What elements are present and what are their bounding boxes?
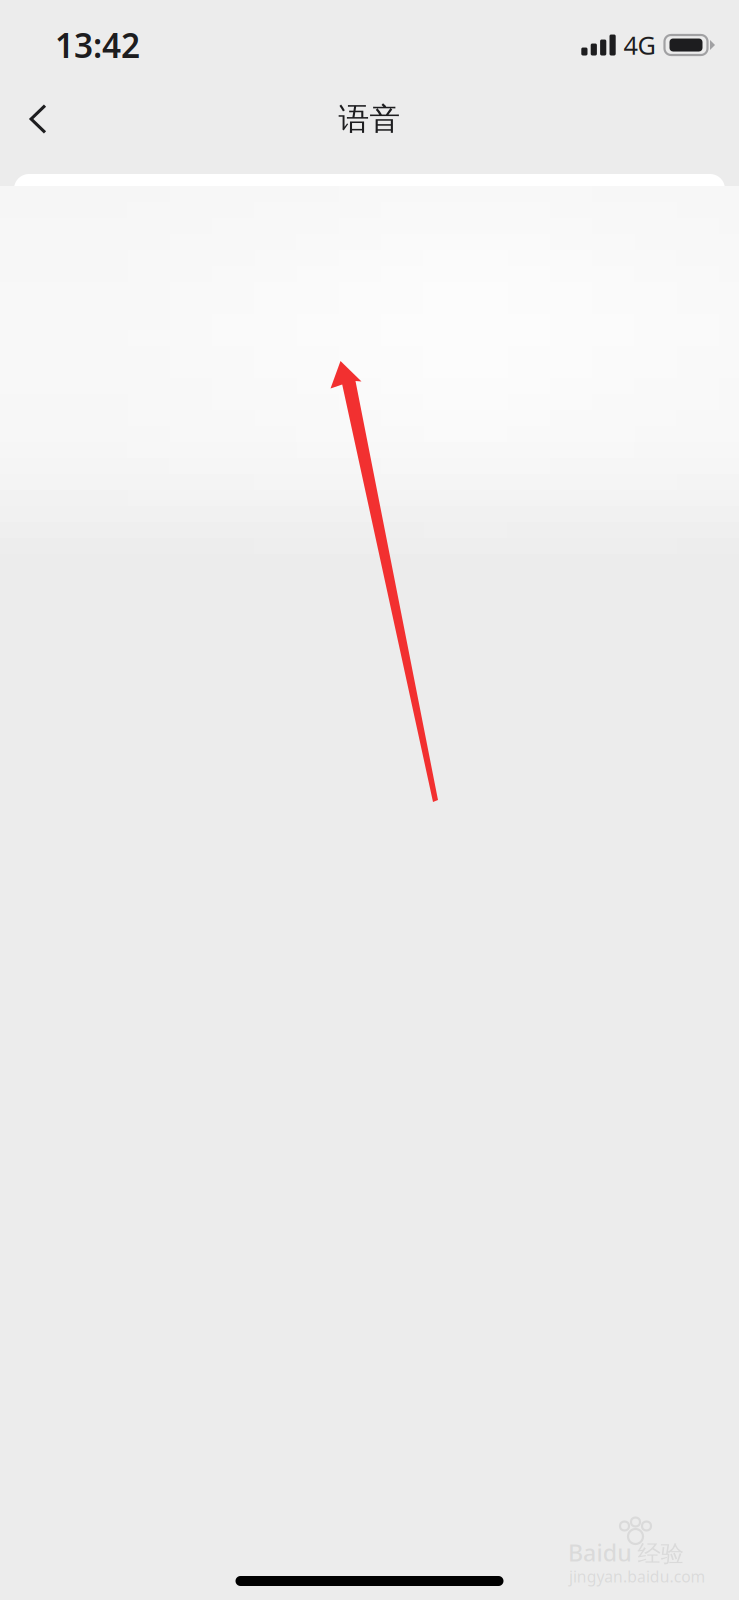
staticText: 4G bbox=[623, 28, 655, 62]
button[interactable]: Back bbox=[9, 89, 67, 149]
staticText: 语音 bbox=[338, 100, 400, 138]
staticText: jingyan.baidu.com bbox=[569, 1566, 739, 1600]
staticText: Baidu 经验 bbox=[568, 1537, 739, 1590]
staticText: 13:42 bbox=[55, 23, 140, 67]
